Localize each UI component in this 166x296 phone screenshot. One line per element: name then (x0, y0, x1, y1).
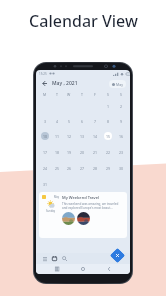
button[interactable]: 28 (91, 164, 99, 172)
staticText: 30 (119, 166, 124, 171)
button[interactable]: 8 (104, 117, 112, 125)
button[interactable]: 22 (104, 148, 112, 156)
staticText: This weekend was amazing, we traveled an… (62, 202, 124, 210)
staticText: 20 (80, 150, 85, 155)
button[interactable]: 11 (53, 132, 61, 140)
staticText: May , 2021 (52, 80, 78, 87)
button[interactable]: 1 (104, 102, 112, 110)
button[interactable]: 25 (53, 164, 61, 172)
staticText: T (81, 92, 83, 97)
staticText: M (43, 92, 47, 97)
button[interactable]: 20 (78, 148, 86, 156)
button[interactable]: 31 (41, 180, 49, 188)
staticText: 4 (56, 119, 59, 124)
staticText: 27 (80, 166, 85, 171)
button[interactable]: 10 (41, 132, 49, 140)
button[interactable]: May (109, 80, 126, 88)
staticText: 24 (43, 166, 48, 171)
staticText: 22 (106, 150, 111, 155)
staticText: 5 (68, 119, 71, 124)
staticText: 10 (43, 134, 48, 139)
staticText: S (107, 92, 109, 97)
button[interactable]: 26 (65, 164, 73, 172)
button[interactable]: 17 (41, 148, 49, 156)
staticText: 9 (120, 119, 123, 124)
staticText: 1 (107, 104, 110, 109)
button[interactable]: 30 (117, 164, 125, 172)
staticText: May (54, 195, 60, 199)
staticText: 21 (93, 150, 98, 155)
button[interactable]: 24 (41, 164, 49, 172)
button[interactable]: 16 (117, 132, 125, 140)
staticText: T (56, 92, 58, 97)
staticText: W (67, 92, 71, 97)
staticText: 11 (55, 134, 60, 139)
staticText: 16 (119, 134, 124, 139)
staticText: 23 (119, 150, 124, 155)
staticText: My Weekend Travel (62, 195, 100, 200)
staticText: 18 (55, 150, 60, 155)
staticText: Sunday (46, 209, 56, 213)
button[interactable]: 5 (65, 117, 73, 125)
button[interactable]: 23 (117, 148, 125, 156)
staticText: 19 (67, 150, 72, 155)
button[interactable]: Recents (52, 264, 62, 274)
button[interactable]: May (39, 192, 127, 238)
button[interactable]: 7 (91, 117, 99, 125)
staticText: 8 (107, 119, 110, 124)
button[interactable]: 12 (65, 132, 73, 140)
staticText: F (94, 92, 96, 97)
staticText: 14 (93, 134, 98, 139)
staticText: 17 (43, 150, 48, 155)
staticText: 28 (93, 166, 98, 171)
button[interactable]: 15 (104, 132, 112, 140)
button[interactable]: 21 (91, 148, 99, 156)
button[interactable]: Home (78, 264, 88, 274)
staticText: May (116, 82, 123, 87)
button[interactable]: Calendar (50, 254, 59, 263)
staticText: S (120, 92, 122, 97)
staticText: 15 (106, 134, 111, 139)
button[interactable]: 29 (104, 164, 112, 172)
button[interactable]: 3 (41, 117, 49, 125)
staticText: 7 (94, 119, 97, 124)
staticText: 2 (120, 104, 123, 109)
staticText: 15:25 (39, 72, 47, 76)
staticText: Calendar View (29, 10, 138, 32)
staticText: 6 (81, 119, 84, 124)
button[interactable]: Search (60, 254, 69, 263)
button[interactable]: Menu (40, 254, 49, 263)
button[interactable]: 4 (53, 117, 61, 125)
staticText: 13 (80, 134, 85, 139)
button[interactable]: 2 (117, 102, 125, 110)
button[interactable]: 18 (53, 148, 61, 156)
staticText: 12 (67, 134, 72, 139)
button[interactable]: 9 (117, 117, 125, 125)
button[interactable]: 6 (78, 117, 86, 125)
button[interactable]: 14 (91, 132, 99, 140)
staticText: 3 (44, 119, 47, 124)
staticText: 31 (43, 182, 48, 187)
button[interactable]: Add event (110, 248, 125, 263)
staticText: 26 (67, 166, 72, 171)
button[interactable]: 27 (78, 164, 86, 172)
staticText: 25 (55, 166, 60, 171)
button[interactable]: Back (40, 79, 49, 88)
button[interactable]: Back (104, 264, 114, 274)
staticText: 29 (106, 166, 111, 171)
button[interactable]: 19 (65, 148, 73, 156)
button[interactable]: 13 (78, 132, 86, 140)
